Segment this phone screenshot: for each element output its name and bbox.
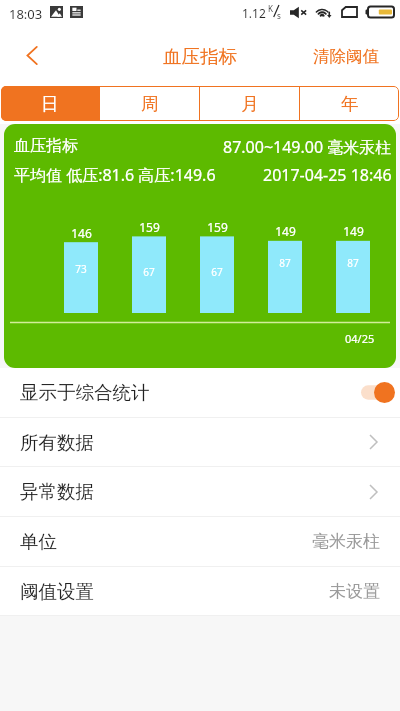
staticText: 未设置 <box>329 581 380 602</box>
button[interactable]: Back <box>0 28 56 83</box>
staticText: 146 <box>71 225 92 241</box>
staticText: 毫米汞柱 <box>312 531 380 552</box>
staticText: 月 <box>241 93 259 115</box>
staticText: 73 <box>75 262 87 276</box>
staticText: K <box>268 3 273 14</box>
staticText: 周 <box>141 93 159 115</box>
staticText: 159 <box>139 219 160 235</box>
staticText: 显示于综合统计 <box>20 381 150 404</box>
button[interactable]: 日 <box>1 86 99 121</box>
staticText: 67 <box>211 265 223 279</box>
button[interactable]: 显示于综合统计 <box>0 368 400 417</box>
button[interactable]: 单位 <box>0 517 400 566</box>
button[interactable]: 周 <box>100 86 199 121</box>
staticText: 67 <box>143 265 155 279</box>
staticText: 所有数据 <box>20 431 94 454</box>
staticText: 04/25 <box>345 331 375 346</box>
button[interactable]: Toggle show in overall statistics <box>361 382 395 403</box>
staticText: 159 <box>207 219 228 235</box>
button[interactable]: 年 <box>300 86 399 121</box>
staticText: 平均值 低压:81.6 高压:149.6 <box>14 164 216 186</box>
staticText: 血压指标 <box>163 45 237 68</box>
button[interactable]: 清除阈值 <box>299 28 400 83</box>
staticText: 87 <box>347 256 359 270</box>
staticText: 1.12 <box>242 5 266 21</box>
staticText: 87 <box>279 256 291 270</box>
staticText: 87.00~149.00 毫米汞柱 <box>223 136 392 158</box>
button[interactable]: 阈值设置 <box>0 567 400 615</box>
staticText: 阈值设置 <box>20 580 94 603</box>
button[interactable]: 月 <box>200 86 299 121</box>
button[interactable]: 异常数据 <box>0 467 400 516</box>
staticText: 149 <box>343 223 364 239</box>
staticText: 年 <box>341 93 359 115</box>
staticText: 18:03 <box>9 5 43 23</box>
staticText: 血压指标 <box>14 136 78 156</box>
staticText: 149 <box>275 223 296 239</box>
staticText: 单位 <box>20 530 57 553</box>
staticText: 异常数据 <box>20 480 94 503</box>
staticText: 清除阈值 <box>313 46 379 67</box>
staticText: 2017-04-25 18:46 <box>263 164 392 186</box>
button[interactable]: 所有数据 <box>0 418 400 466</box>
staticText: 日 <box>41 93 59 115</box>
staticText: s <box>277 10 281 21</box>
